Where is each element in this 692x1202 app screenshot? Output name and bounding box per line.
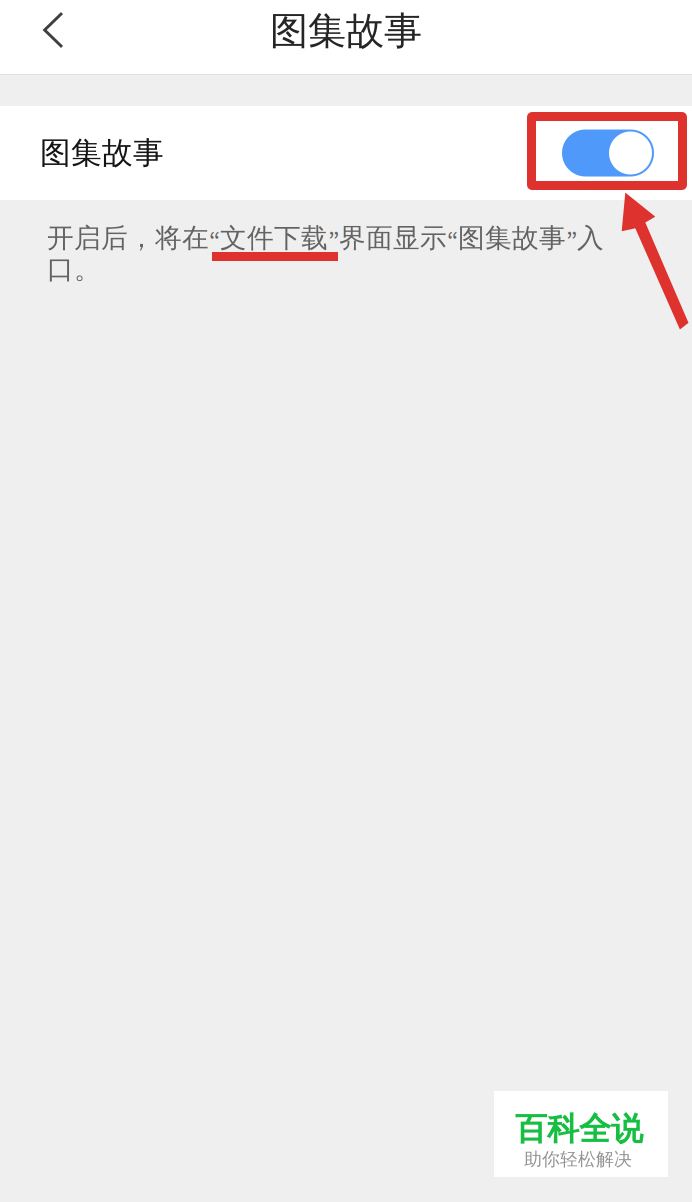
staticText: 助你轻松解决 <box>524 1148 632 1170</box>
button[interactable]: 图集故事，开 <box>562 129 654 176</box>
staticText: 百科全说 <box>515 1109 643 1149</box>
button[interactable]: 返回 <box>0 0 129 60</box>
button[interactable]: 图集故事 <box>0 106 692 200</box>
staticText: 图集故事 <box>270 7 422 55</box>
staticText: 图集故事 <box>40 134 164 172</box>
staticText: 开启后，将在“文件下载”界面显示“图集故事”入口。 <box>47 225 604 282</box>
